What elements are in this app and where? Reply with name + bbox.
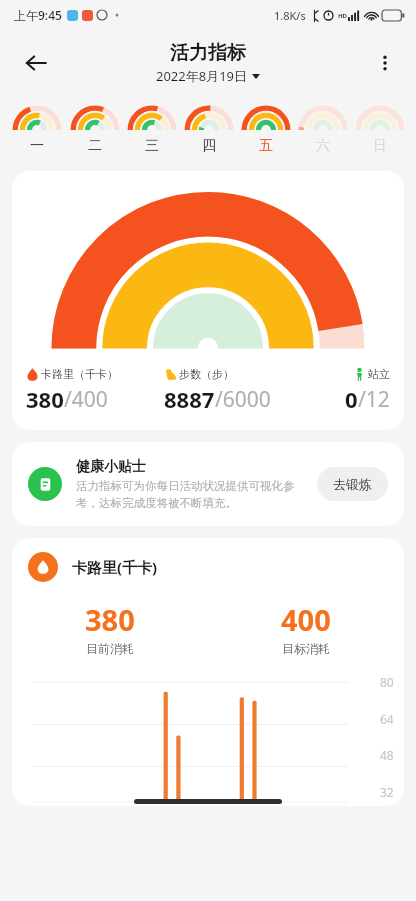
staticText: 64 (380, 711, 394, 727)
staticText: HD (338, 12, 347, 20)
staticText: 2022年8月19日 (156, 67, 248, 85)
staticText: 三 (145, 137, 159, 155)
staticText: 一 (30, 137, 44, 155)
staticText: 80 (380, 674, 394, 690)
button[interactable]: 日 (351, 100, 408, 159)
button[interactable]: 卡路里（千卡） (12, 171, 404, 430)
button[interactable]: 三 (123, 100, 180, 159)
button[interactable]: 六 (294, 100, 351, 159)
staticText: 去锻炼 (333, 476, 372, 492)
staticText: 目前消耗 (86, 641, 134, 656)
staticText: 站立 (368, 367, 390, 381)
staticText: 活力指标 (170, 41, 246, 65)
staticText: /6000 (215, 385, 271, 414)
staticText: 卡路里(千卡) (72, 557, 158, 577)
staticText: 380 (26, 384, 64, 414)
button[interactable]: 步数（步） (164, 367, 298, 414)
button[interactable]: 卡路里（千卡） (26, 367, 164, 414)
staticText: 32 (380, 784, 394, 800)
button[interactable]: 五 (237, 100, 294, 159)
button[interactable]: 站立 (298, 367, 390, 414)
staticText: 目标消耗 (282, 641, 330, 656)
button[interactable]: More options (364, 42, 406, 84)
button[interactable]: 四 (180, 100, 237, 159)
staticText: /12 (358, 385, 390, 414)
button[interactable]: 卡路里(千卡) (12, 538, 404, 806)
button[interactable]: 去锻炼 (317, 467, 388, 501)
button[interactable]: 健康小贴士 (12, 442, 404, 526)
staticText: 五 (259, 137, 273, 155)
staticText: 活力指标可为你每日活动状况提供可视化参考，达标完成度将被不断填充。 (76, 479, 307, 510)
staticText: 0 (345, 384, 358, 414)
staticText: 上午9:45 (14, 7, 62, 23)
staticText: 卡路里（千卡） (41, 367, 118, 381)
staticText: 日 (373, 137, 387, 155)
button[interactable]: 一 (8, 100, 66, 159)
staticText: 二 (88, 137, 102, 155)
button[interactable]: Back (14, 41, 58, 85)
staticText: 380 (85, 600, 135, 639)
staticText: 400 (281, 600, 331, 639)
staticText: 48 (380, 747, 394, 763)
staticText: /400 (64, 385, 108, 414)
button[interactable]: 二 (66, 100, 123, 159)
staticText: 1.8K/s (274, 8, 306, 23)
staticText: 健康小贴士 (76, 458, 146, 476)
staticText: 六 (316, 137, 330, 155)
staticText: 8887 (164, 384, 215, 414)
staticText: 步数（步） (179, 367, 234, 381)
button[interactable]: 2022年8月19日 (154, 67, 262, 85)
staticText: 四 (202, 137, 216, 155)
